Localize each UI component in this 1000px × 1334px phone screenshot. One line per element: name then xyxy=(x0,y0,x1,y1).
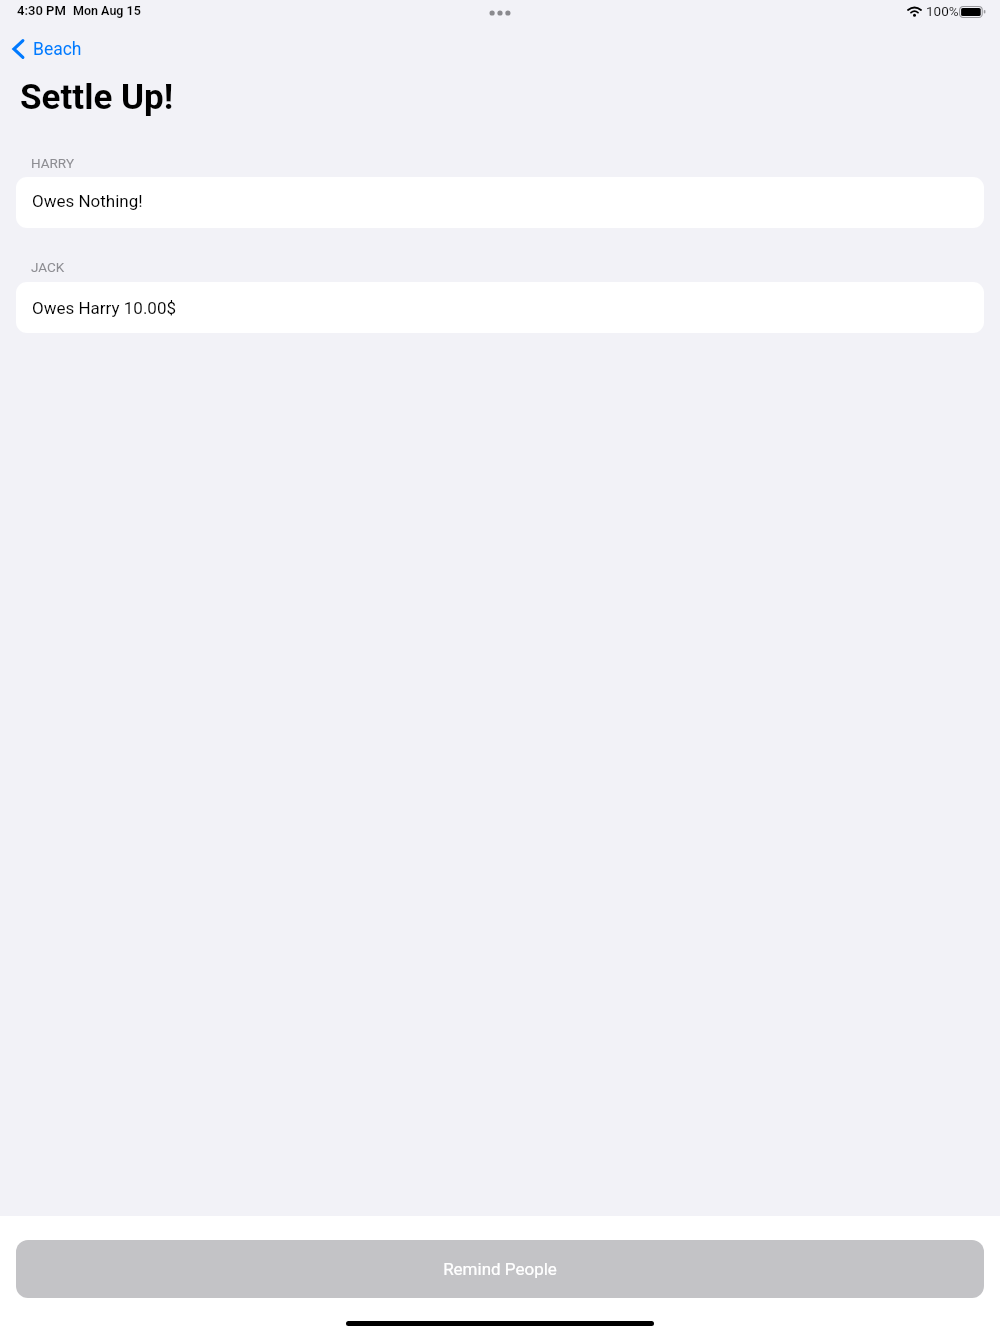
staticText: Beach xyxy=(33,39,82,60)
button[interactable]: Owes Nothing! xyxy=(16,177,984,228)
staticText: JACK xyxy=(31,259,65,275)
button[interactable]: Back to Beach xyxy=(6,33,88,64)
button[interactable]: Remind People xyxy=(16,1240,984,1298)
staticText: Owes Nothing! xyxy=(32,191,143,211)
button[interactable]: Owes Harry 10.00$ xyxy=(16,282,984,333)
staticText: Settle Up! xyxy=(20,77,174,118)
staticText: HARRY xyxy=(31,155,74,171)
staticText: Remind People xyxy=(443,1259,557,1279)
staticText: Mon Aug 15 xyxy=(73,3,141,18)
staticText: Owes Harry 10.00$ xyxy=(32,298,177,318)
staticText: 4:30 PM xyxy=(17,3,66,18)
staticText: 100% xyxy=(926,3,959,19)
